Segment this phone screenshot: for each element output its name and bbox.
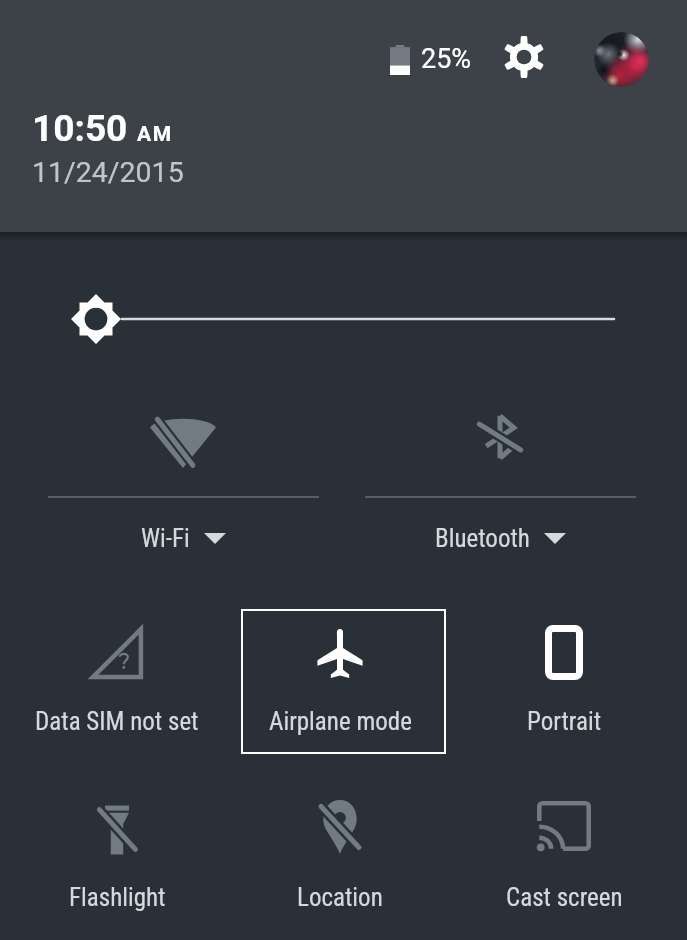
staticText: Data SIM not set (35, 707, 199, 736)
button[interactable]: User profile (594, 32, 649, 87)
staticText: Wi-Fi (141, 524, 190, 552)
staticText: Bluetooth (435, 524, 530, 552)
button[interactable]: Cast screen (452, 785, 676, 930)
staticText: 25% (421, 43, 472, 75)
staticText: 11/24/2015 (32, 156, 184, 189)
staticText: Airplane mode (269, 707, 412, 736)
button[interactable]: Portrait (452, 609, 676, 754)
staticText: AM (137, 122, 173, 147)
button[interactable]: Wi-Fi (43, 400, 323, 552)
button[interactable]: Settings (500, 33, 548, 81)
button[interactable]: Brightness (60, 285, 626, 353)
staticText: Cast screen (506, 883, 623, 912)
button[interactable]: Flashlight (5, 785, 229, 930)
button[interactable]: Location (228, 785, 452, 930)
staticText: Portrait (527, 707, 602, 736)
staticText: Location (297, 883, 383, 912)
staticText: 10:50 (32, 107, 128, 150)
button[interactable]: Data SIM not set (5, 609, 229, 754)
button[interactable]: Airplane mode (228, 609, 452, 754)
staticText: Flashlight (69, 883, 166, 912)
button[interactable]: Bluetooth (360, 400, 640, 552)
